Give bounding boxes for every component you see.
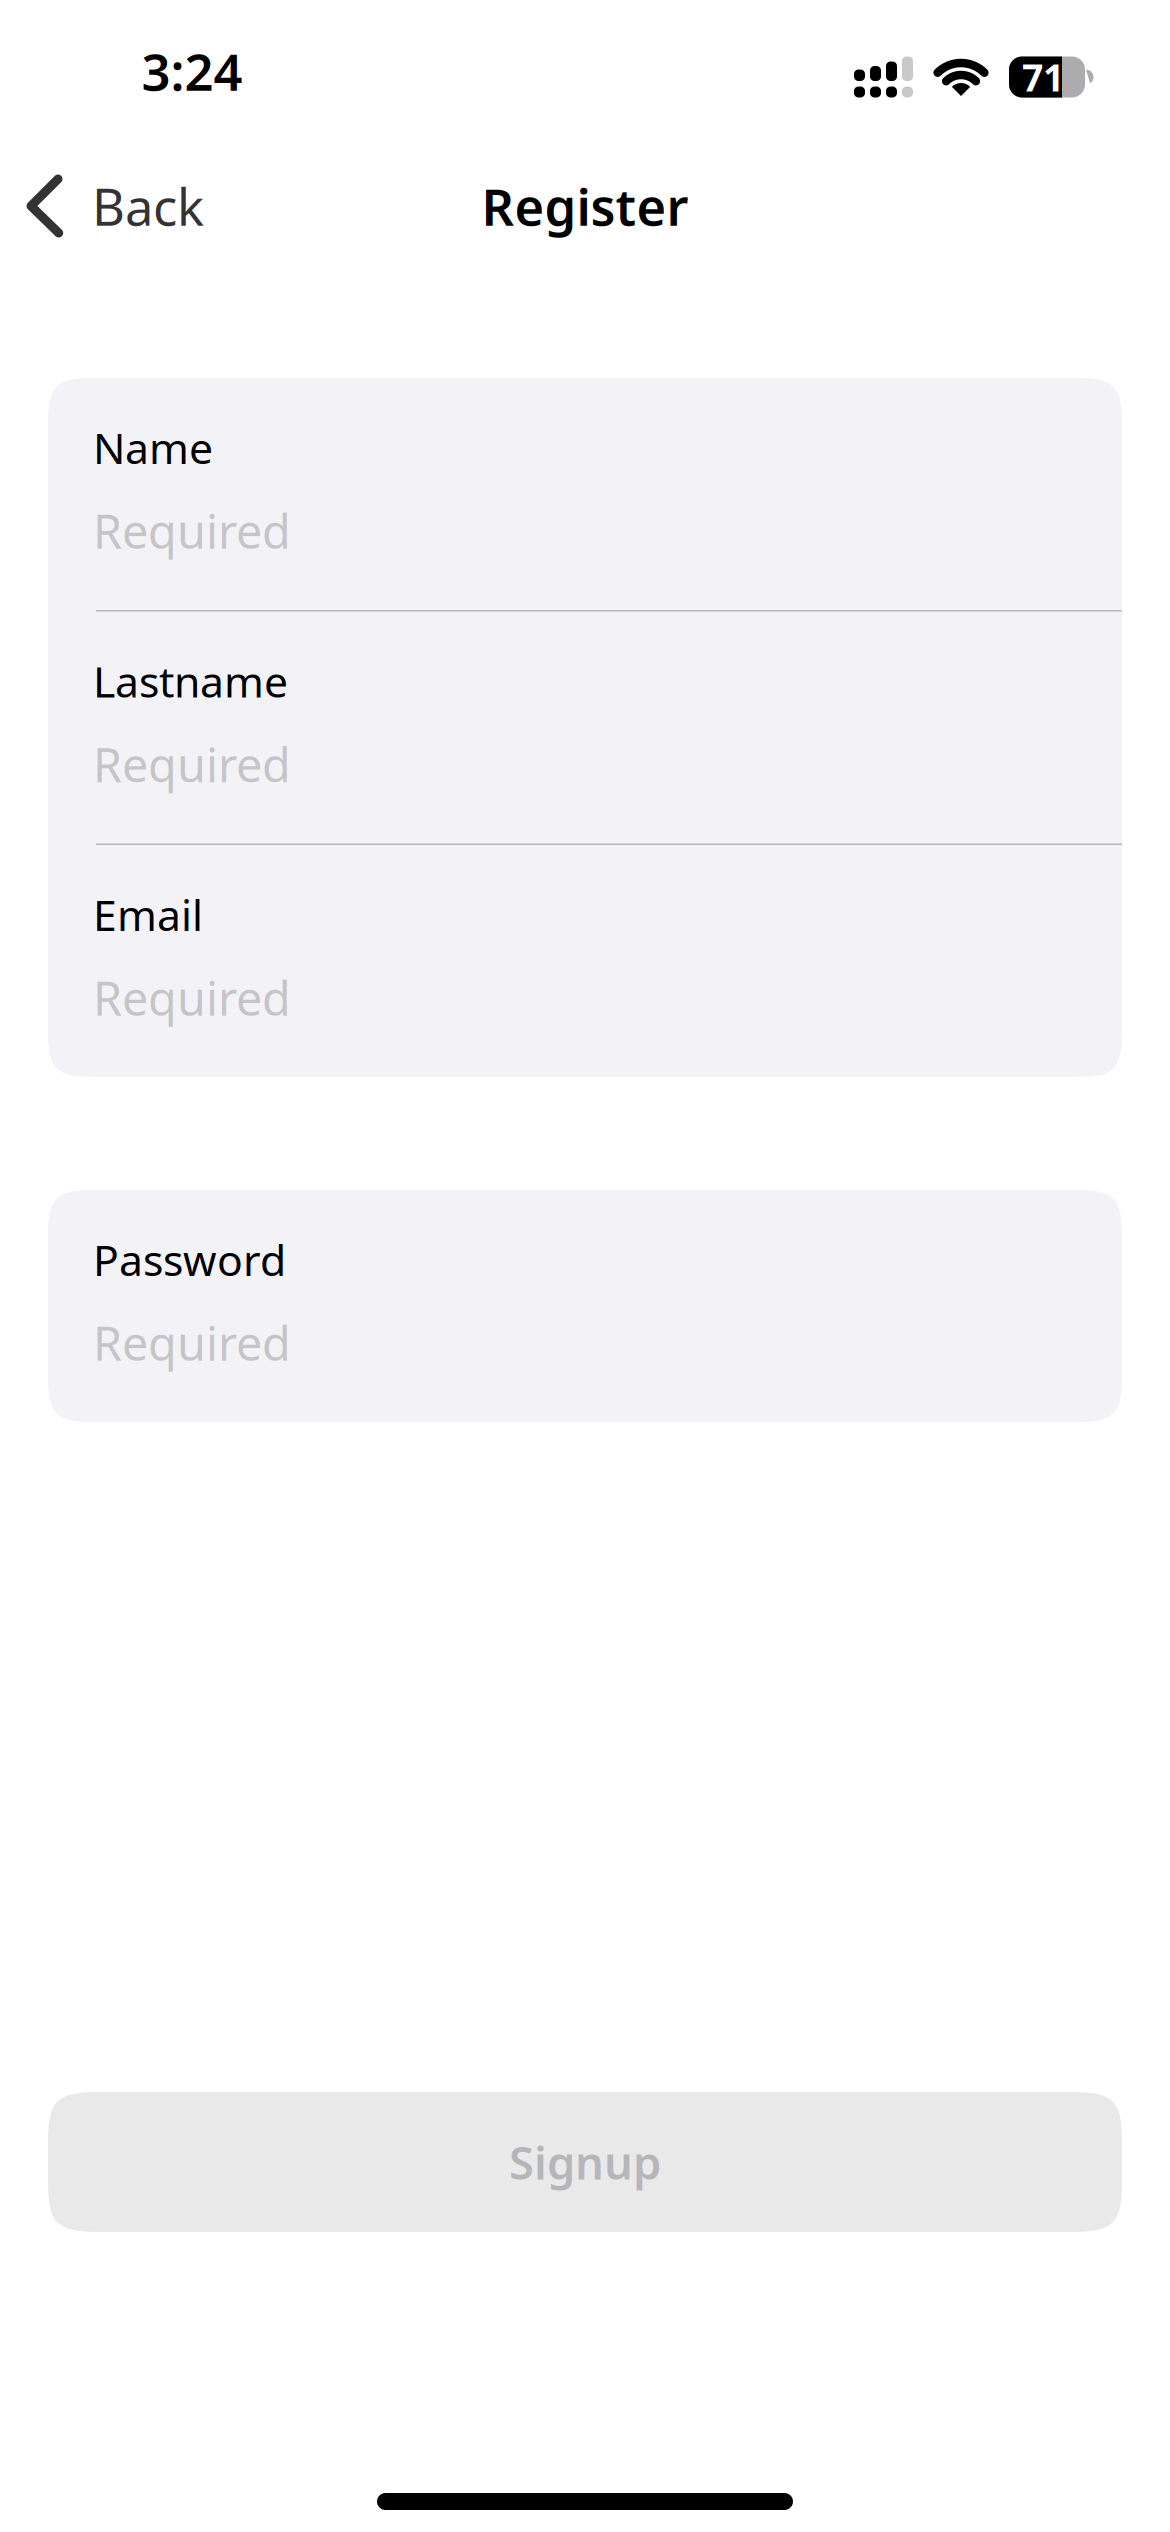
staticText: 71 [1022,52,1064,102]
button[interactable]: Signup [48,2092,1122,2232]
staticText: Name [93,419,213,476]
button[interactable]: Name [48,378,1122,610]
staticText: Required [93,967,291,1029]
staticText: Back [92,172,204,240]
staticText: Required [93,1312,291,1374]
staticText: Register [481,172,688,240]
staticText: Signup [509,2132,661,2192]
button[interactable]: Password [48,1190,1122,1422]
staticText: Required [93,733,291,795]
button[interactable]: Lastname [48,611,1122,843]
staticText: Email [93,886,203,943]
button[interactable]: Email [48,845,1122,1077]
staticText: 3:24 [141,37,242,105]
staticText: Required [93,500,291,562]
button[interactable]: Back [0,172,204,240]
staticText: Lastname [93,652,288,709]
staticText: Password [93,1231,286,1288]
